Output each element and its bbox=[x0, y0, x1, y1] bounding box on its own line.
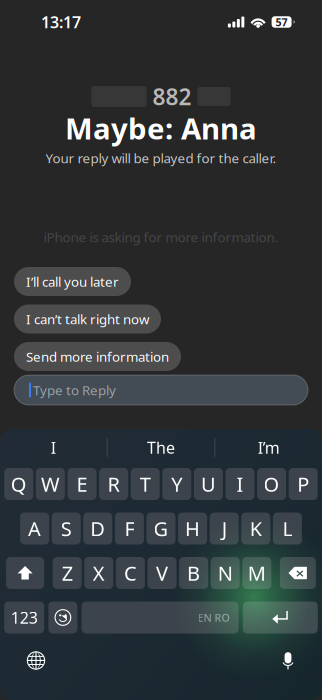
staticText: I can’t talk right now bbox=[26, 310, 149, 328]
staticText: J bbox=[222, 515, 227, 542]
staticText: I bbox=[236, 471, 243, 497]
staticText: G bbox=[153, 515, 168, 542]
button[interactable]: T bbox=[131, 468, 160, 500]
button[interactable]: 123 bbox=[4, 601, 44, 633]
button[interactable]: M bbox=[242, 557, 271, 589]
button[interactable]: N bbox=[211, 557, 240, 589]
staticText: E bbox=[76, 471, 87, 497]
button[interactable]: Y bbox=[162, 468, 191, 500]
button[interactable]: V bbox=[147, 557, 176, 589]
staticText: Type to Reply bbox=[33, 381, 116, 399]
staticText: Q bbox=[11, 471, 27, 497]
button[interactable]: W bbox=[36, 468, 65, 500]
button[interactable]: I can’t talk right now bbox=[14, 304, 161, 333]
button[interactable]: EN RO bbox=[82, 601, 239, 633]
button[interactable]: Dictate bbox=[274, 645, 302, 676]
staticText: T bbox=[140, 471, 151, 497]
button[interactable]: The bbox=[108, 429, 214, 466]
button[interactable]: C bbox=[116, 557, 145, 589]
staticText: H bbox=[185, 515, 200, 542]
staticText: C bbox=[124, 560, 137, 586]
staticText: S bbox=[61, 515, 72, 542]
staticText: 57 bbox=[276, 15, 288, 29]
button[interactable]: I bbox=[225, 468, 254, 500]
staticText: B bbox=[187, 560, 200, 586]
button[interactable]: Send more information bbox=[14, 342, 181, 371]
staticText: The bbox=[147, 437, 175, 458]
button[interactable]: E bbox=[67, 468, 96, 500]
staticText: D bbox=[90, 515, 105, 542]
button[interactable]: I’m bbox=[215, 429, 322, 466]
staticText: Send more information bbox=[26, 348, 169, 365]
staticText: Maybe: Anna bbox=[65, 108, 257, 147]
staticText: V bbox=[156, 560, 168, 586]
staticText: I’ll call you later bbox=[26, 273, 119, 290]
staticText: Your reply will be played for the caller… bbox=[45, 149, 276, 167]
button[interactable] bbox=[48, 601, 77, 633]
staticText: 13:17 bbox=[41, 11, 81, 33]
staticText: F bbox=[124, 515, 134, 542]
staticText: iPhone is asking for more information. bbox=[43, 228, 278, 246]
button[interactable]: U bbox=[194, 468, 223, 500]
button[interactable]: D bbox=[83, 512, 112, 544]
button[interactable]: F bbox=[115, 512, 144, 544]
staticText: K bbox=[250, 515, 262, 542]
staticText: L bbox=[282, 515, 292, 542]
staticText: X bbox=[93, 560, 105, 586]
button[interactable]: R bbox=[99, 468, 128, 500]
button[interactable]: X bbox=[84, 557, 113, 589]
staticText: Z bbox=[62, 560, 73, 586]
button[interactable]: Q bbox=[4, 468, 33, 500]
staticText: 123 bbox=[11, 607, 38, 628]
button[interactable]: Z bbox=[53, 557, 82, 589]
button[interactable]: Next keyboard bbox=[20, 644, 52, 676]
button[interactable] bbox=[6, 557, 44, 589]
staticText: U bbox=[201, 471, 216, 497]
button[interactable]: Type to Reply bbox=[0, 375, 322, 405]
button[interactable]: L bbox=[273, 512, 302, 544]
button[interactable]: P bbox=[289, 468, 318, 500]
button[interactable] bbox=[280, 557, 316, 589]
staticText: M bbox=[248, 560, 266, 586]
button[interactable]: K bbox=[241, 512, 270, 544]
staticText: O bbox=[264, 471, 280, 497]
button[interactable]: I bbox=[0, 429, 107, 466]
button[interactable]: J bbox=[210, 512, 239, 544]
staticText: P bbox=[297, 471, 309, 497]
button[interactable] bbox=[243, 601, 318, 633]
staticText: EN RO bbox=[198, 610, 230, 625]
staticText: I bbox=[51, 437, 56, 458]
staticText: I’m bbox=[258, 437, 280, 458]
button[interactable]: O bbox=[257, 468, 286, 500]
button[interactable]: I’ll call you later bbox=[14, 267, 131, 296]
button[interactable]: G bbox=[146, 512, 175, 544]
button[interactable]: B bbox=[179, 557, 208, 589]
staticText: A bbox=[28, 515, 41, 542]
staticText: R bbox=[108, 471, 120, 497]
staticText: Y bbox=[171, 471, 182, 497]
staticText: 882 bbox=[152, 81, 191, 111]
button[interactable]: A bbox=[20, 512, 49, 544]
staticText: W bbox=[41, 471, 60, 497]
staticText: N bbox=[218, 560, 233, 586]
button[interactable]: S bbox=[52, 512, 81, 544]
button[interactable]: H bbox=[178, 512, 207, 544]
